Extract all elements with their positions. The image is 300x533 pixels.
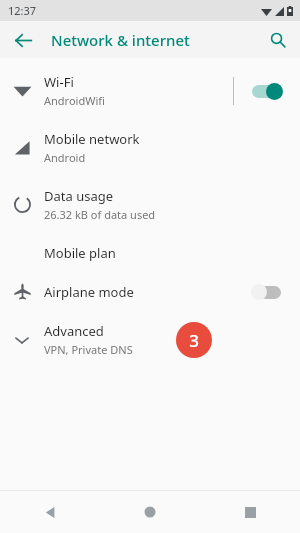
staticText: Mobile plan [44,244,116,262]
staticText: 26.32 kB of data used [44,207,156,222]
staticText: Airplane mode [44,283,134,301]
staticText: VPN, Private DNS [44,342,133,357]
button[interactable]: Back [0,491,100,533]
button[interactable]: Recent apps [200,491,300,533]
button[interactable]: Airplane mode [0,272,300,311]
staticText: 3 [189,329,199,352]
button[interactable]: Data usage [0,176,300,233]
staticText: 12:37 [8,3,37,18]
staticText: Mobile network [44,130,140,148]
button[interactable] [250,283,284,301]
staticText: Android [44,150,86,165]
staticText: Advanced [44,322,104,340]
staticText: Network & internet [51,30,190,50]
button[interactable]: Back [8,25,38,55]
button[interactable]: Mobile plan [0,233,300,272]
button[interactable]: Mobile network [0,119,300,176]
button[interactable]: Wi-Fi [0,62,300,119]
button[interactable]: Home [100,491,200,533]
staticText: AndroidWifi [44,93,105,108]
staticText: Data usage [44,187,114,205]
button[interactable]: Search [264,26,292,54]
button[interactable]: Advanced [0,311,300,368]
staticText: Wi-Fi [44,73,74,91]
button[interactable] [250,82,284,100]
